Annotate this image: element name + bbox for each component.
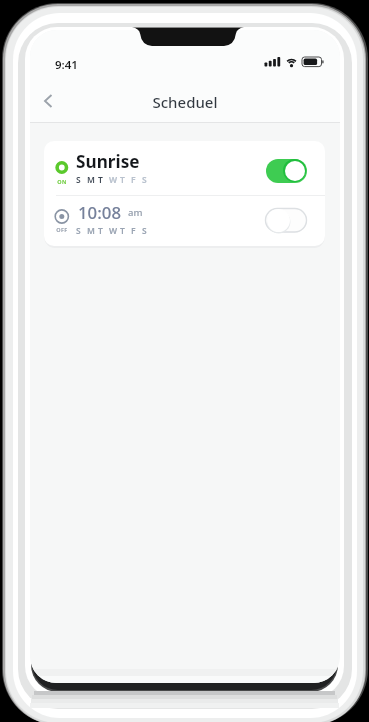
- staticText: 10:08: [78, 201, 121, 224]
- button[interactable]: ON: [44, 141, 325, 195]
- staticText: F: [131, 225, 136, 237]
- staticText: F: [131, 174, 136, 186]
- staticText: S: [142, 225, 147, 237]
- staticText: 9:41: [55, 57, 78, 73]
- staticText: OFF: [53, 226, 71, 233]
- staticText: T: [120, 174, 125, 186]
- staticText: Sunrise: [76, 150, 140, 173]
- staticText: T: [98, 225, 103, 237]
- button[interactable]: [266, 209, 307, 233]
- button[interactable]: [38, 90, 58, 112]
- button[interactable]: [266, 159, 307, 183]
- staticText: M: [87, 225, 95, 237]
- staticText: ON: [54, 178, 70, 185]
- staticText: T: [120, 225, 125, 237]
- staticText: am: [128, 206, 143, 219]
- staticText: S: [142, 174, 147, 186]
- staticText: T: [98, 174, 103, 186]
- staticText: W: [109, 174, 118, 186]
- staticText: M: [87, 174, 95, 186]
- staticText: S: [76, 174, 81, 186]
- staticText: Scheduel: [30, 92, 340, 112]
- staticText: W: [109, 225, 118, 237]
- staticText: S: [76, 225, 81, 237]
- button[interactable]: OFF: [44, 195, 325, 246]
